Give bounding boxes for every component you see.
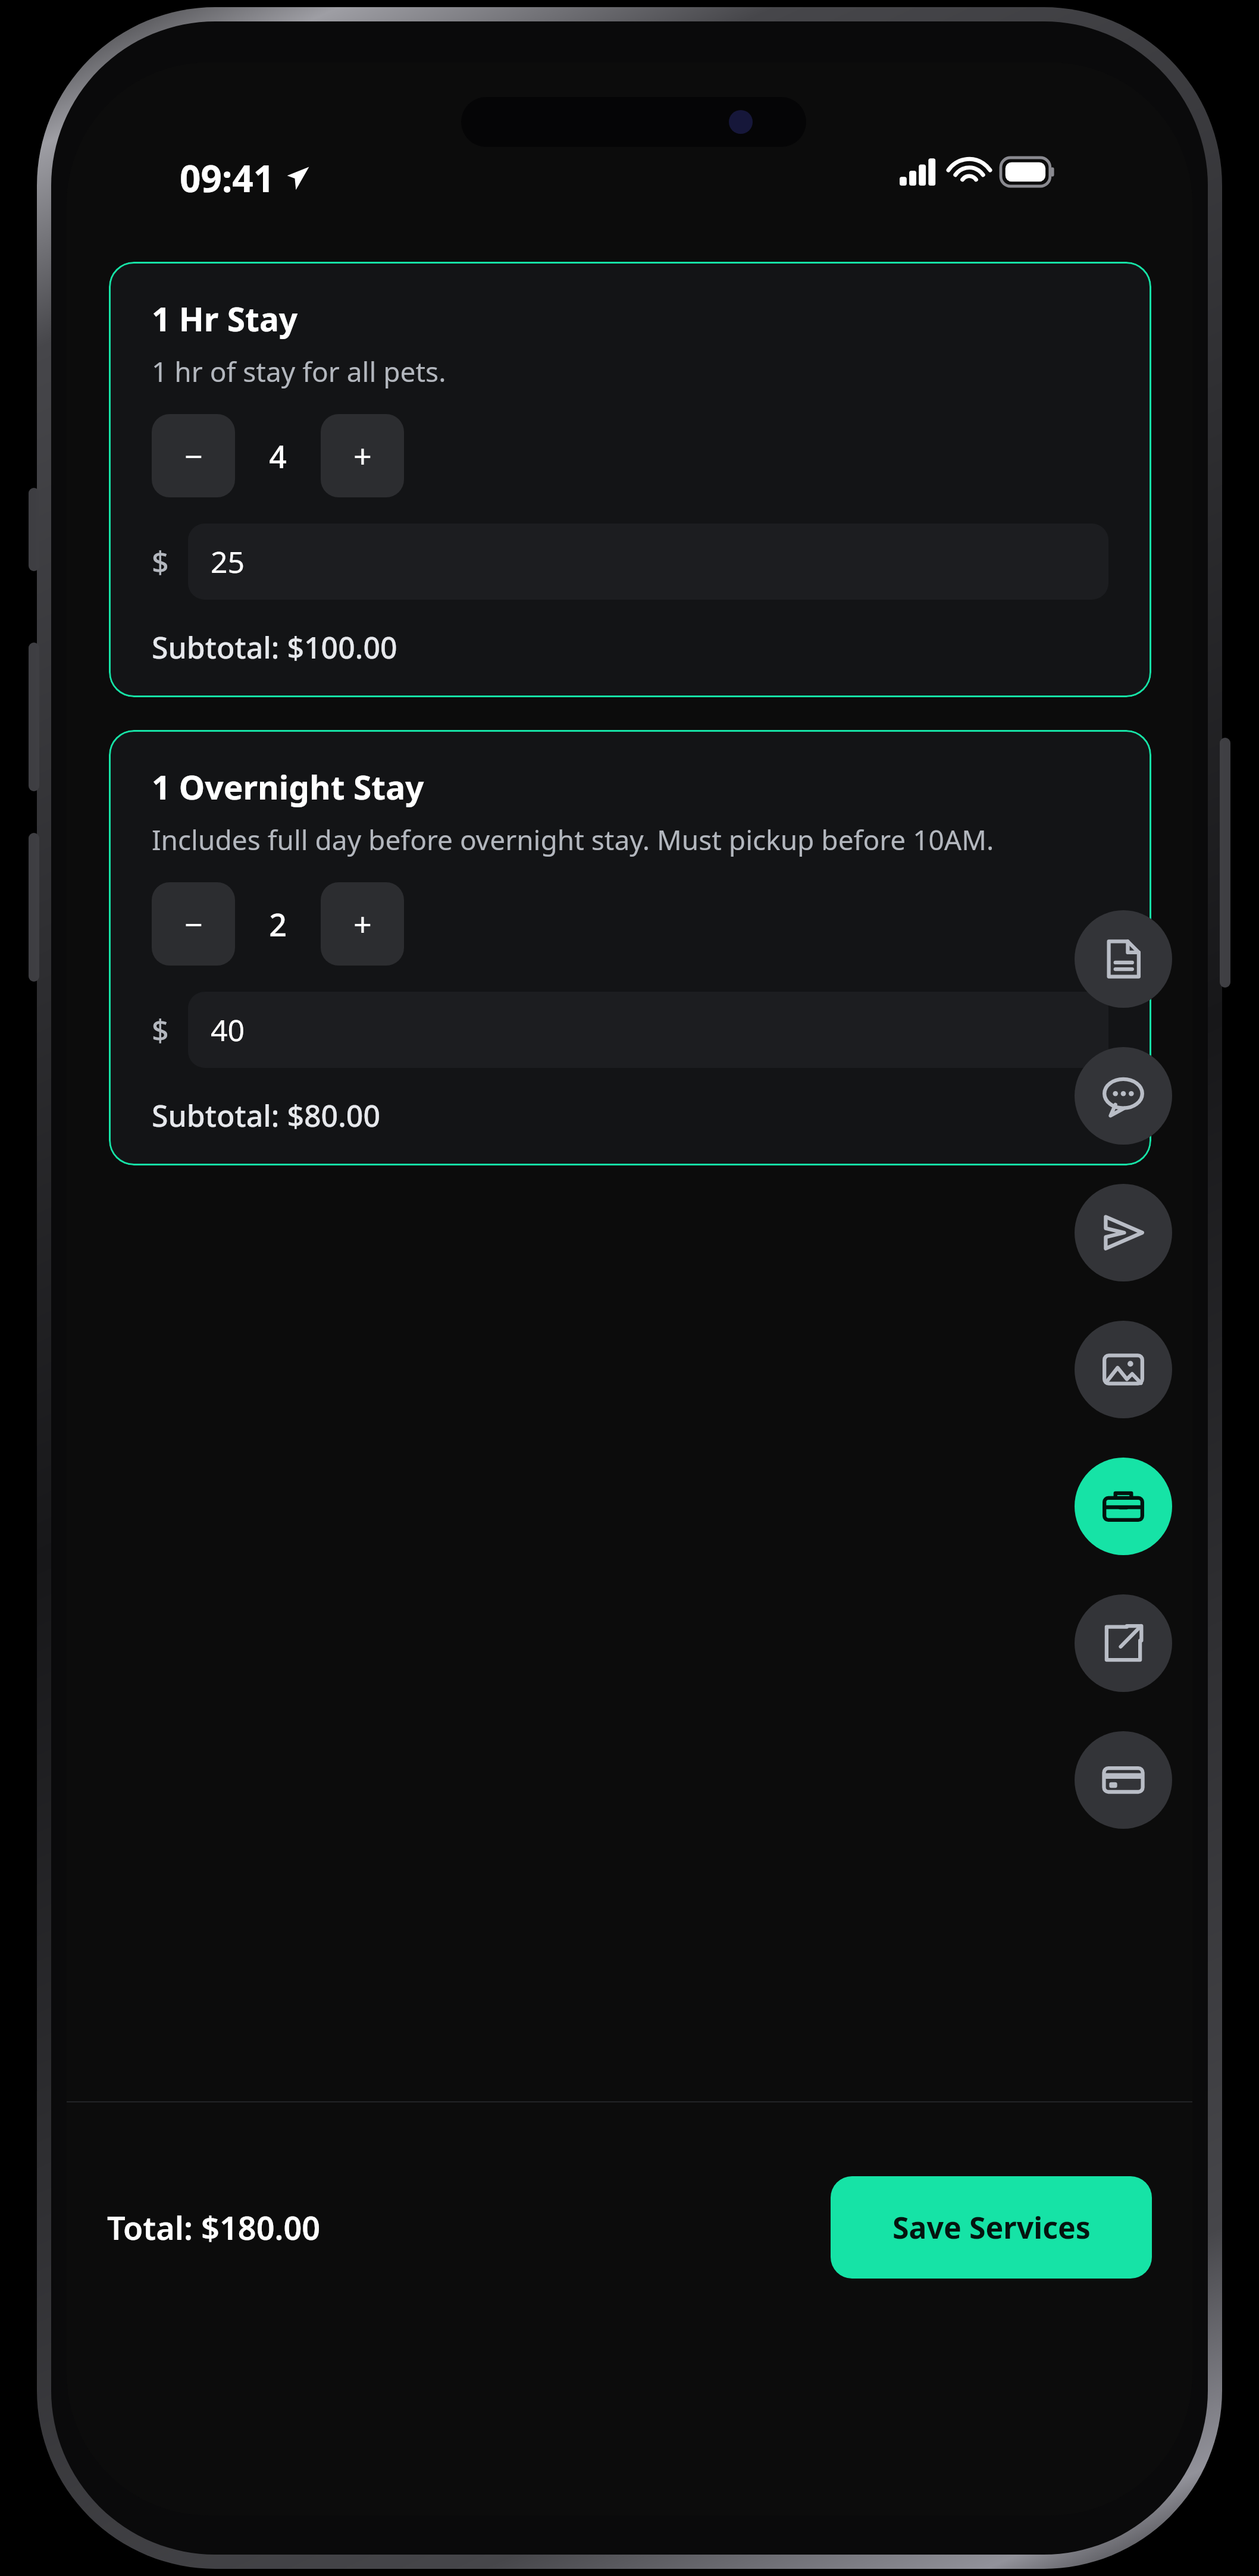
staticText: + [353, 434, 372, 478]
staticText: 40 [211, 1010, 245, 1050]
staticText: 09:41 [180, 153, 275, 203]
staticText: + [353, 902, 372, 946]
button[interactable]: Increase [321, 882, 404, 966]
staticText: Subtotal: $80.00 [152, 1095, 380, 1136]
button[interactable]: Increase [321, 414, 404, 497]
staticText: Includes full day before overnight stay.… [152, 821, 994, 858]
button[interactable]: Messages [1075, 1047, 1172, 1145]
staticText: 25 [211, 541, 245, 582]
button[interactable]: Open link [1075, 1594, 1172, 1692]
button[interactable]: 1 Overnight Stay [109, 730, 1151, 1165]
button[interactable]: 40 [188, 992, 1108, 1068]
button[interactable]: 25 [188, 524, 1108, 600]
button[interactable]: Send [1075, 1184, 1172, 1281]
staticText: Total: $180.00 [107, 2205, 321, 2249]
staticText: Subtotal: $100.00 [152, 627, 397, 667]
button[interactable]: Payment [1075, 1731, 1172, 1829]
staticText: − [184, 434, 203, 478]
button[interactable]: 1 Hr Stay [109, 262, 1151, 697]
staticText: 4 [269, 435, 287, 477]
staticText: 1 Overnight Stay [152, 764, 424, 809]
button[interactable]: Save Services [831, 2176, 1152, 2279]
button[interactable]: Decrease [152, 882, 235, 966]
staticText: $ [152, 1010, 169, 1050]
button[interactable]: Photos [1075, 1321, 1172, 1418]
staticText: 1 Hr Stay [152, 296, 298, 341]
button[interactable]: Document [1075, 910, 1172, 1008]
button[interactable]: Services [1075, 1458, 1172, 1555]
staticText: 1 hr of stay for all pets. [152, 353, 446, 390]
staticText: $ [152, 541, 169, 582]
staticText: 2 [269, 903, 287, 945]
button[interactable]: Decrease [152, 414, 235, 497]
staticText: Save Services [892, 2207, 1091, 2248]
staticText: − [184, 902, 203, 946]
